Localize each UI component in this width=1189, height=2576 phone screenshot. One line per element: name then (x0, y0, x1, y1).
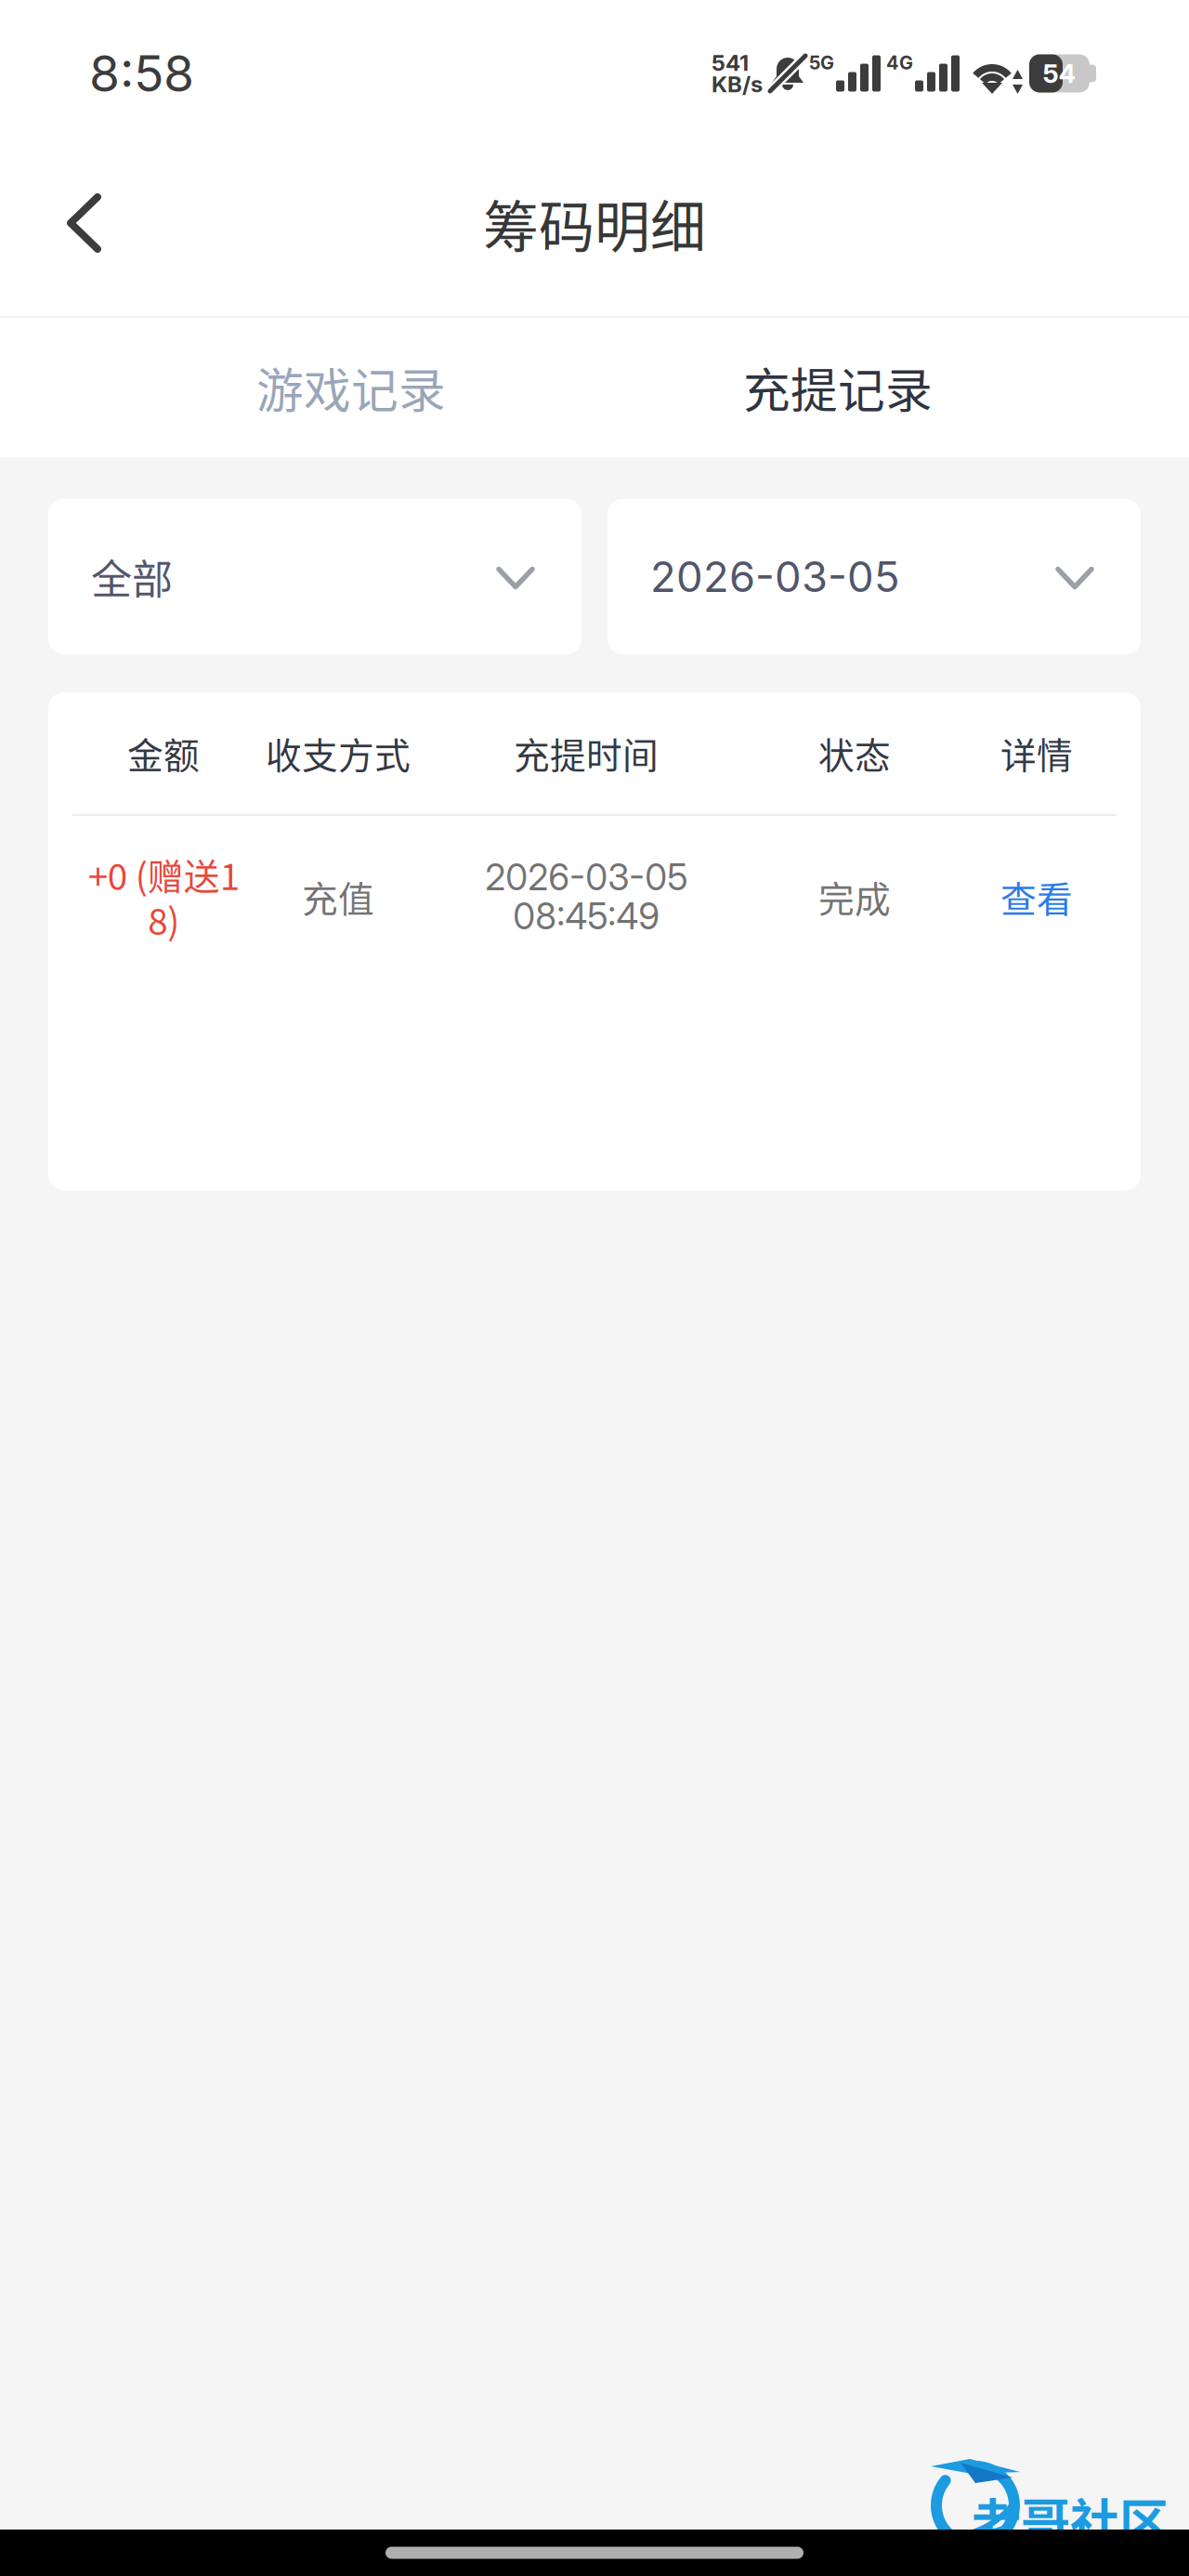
staticText: 2026-03-05 (650, 551, 900, 602)
staticText: 状态 (818, 727, 891, 779)
staticText: 充提记录 (743, 353, 933, 422)
staticText: +0 (赠送1 8) (88, 852, 239, 941)
staticText: 5G (809, 51, 834, 74)
staticText: 老哥社区 (972, 2483, 1169, 2555)
button[interactable]: Back (33, 167, 136, 279)
staticText: 完成 (818, 871, 891, 923)
staticText: 查看 (1000, 871, 1073, 923)
staticText: 4G (886, 51, 913, 74)
staticText: 金额 (127, 727, 200, 779)
button[interactable]: 2026-03-05 (608, 499, 1141, 654)
button[interactable]: 查看 (953, 827, 1120, 966)
staticText: 2026-03-05 08:45:49 (485, 858, 687, 936)
staticText: 54 (1043, 58, 1076, 89)
staticText: 541 (712, 49, 749, 76)
staticText: 8:58 (89, 43, 194, 103)
staticText: 全部 (91, 547, 173, 606)
staticText: 游戏记录 (256, 353, 446, 422)
button[interactable]: 充提记录 (594, 318, 1081, 457)
button[interactable]: 全部 (48, 499, 581, 654)
staticText: 详情 (1000, 727, 1073, 779)
staticText: 筹码明细 (483, 183, 706, 263)
staticText: 收支方式 (266, 727, 411, 779)
staticText: 充提时间 (514, 727, 659, 779)
staticText: KB/s (712, 71, 763, 98)
staticText: 充值 (302, 871, 374, 923)
button[interactable]: 游戏记录 (108, 318, 594, 457)
